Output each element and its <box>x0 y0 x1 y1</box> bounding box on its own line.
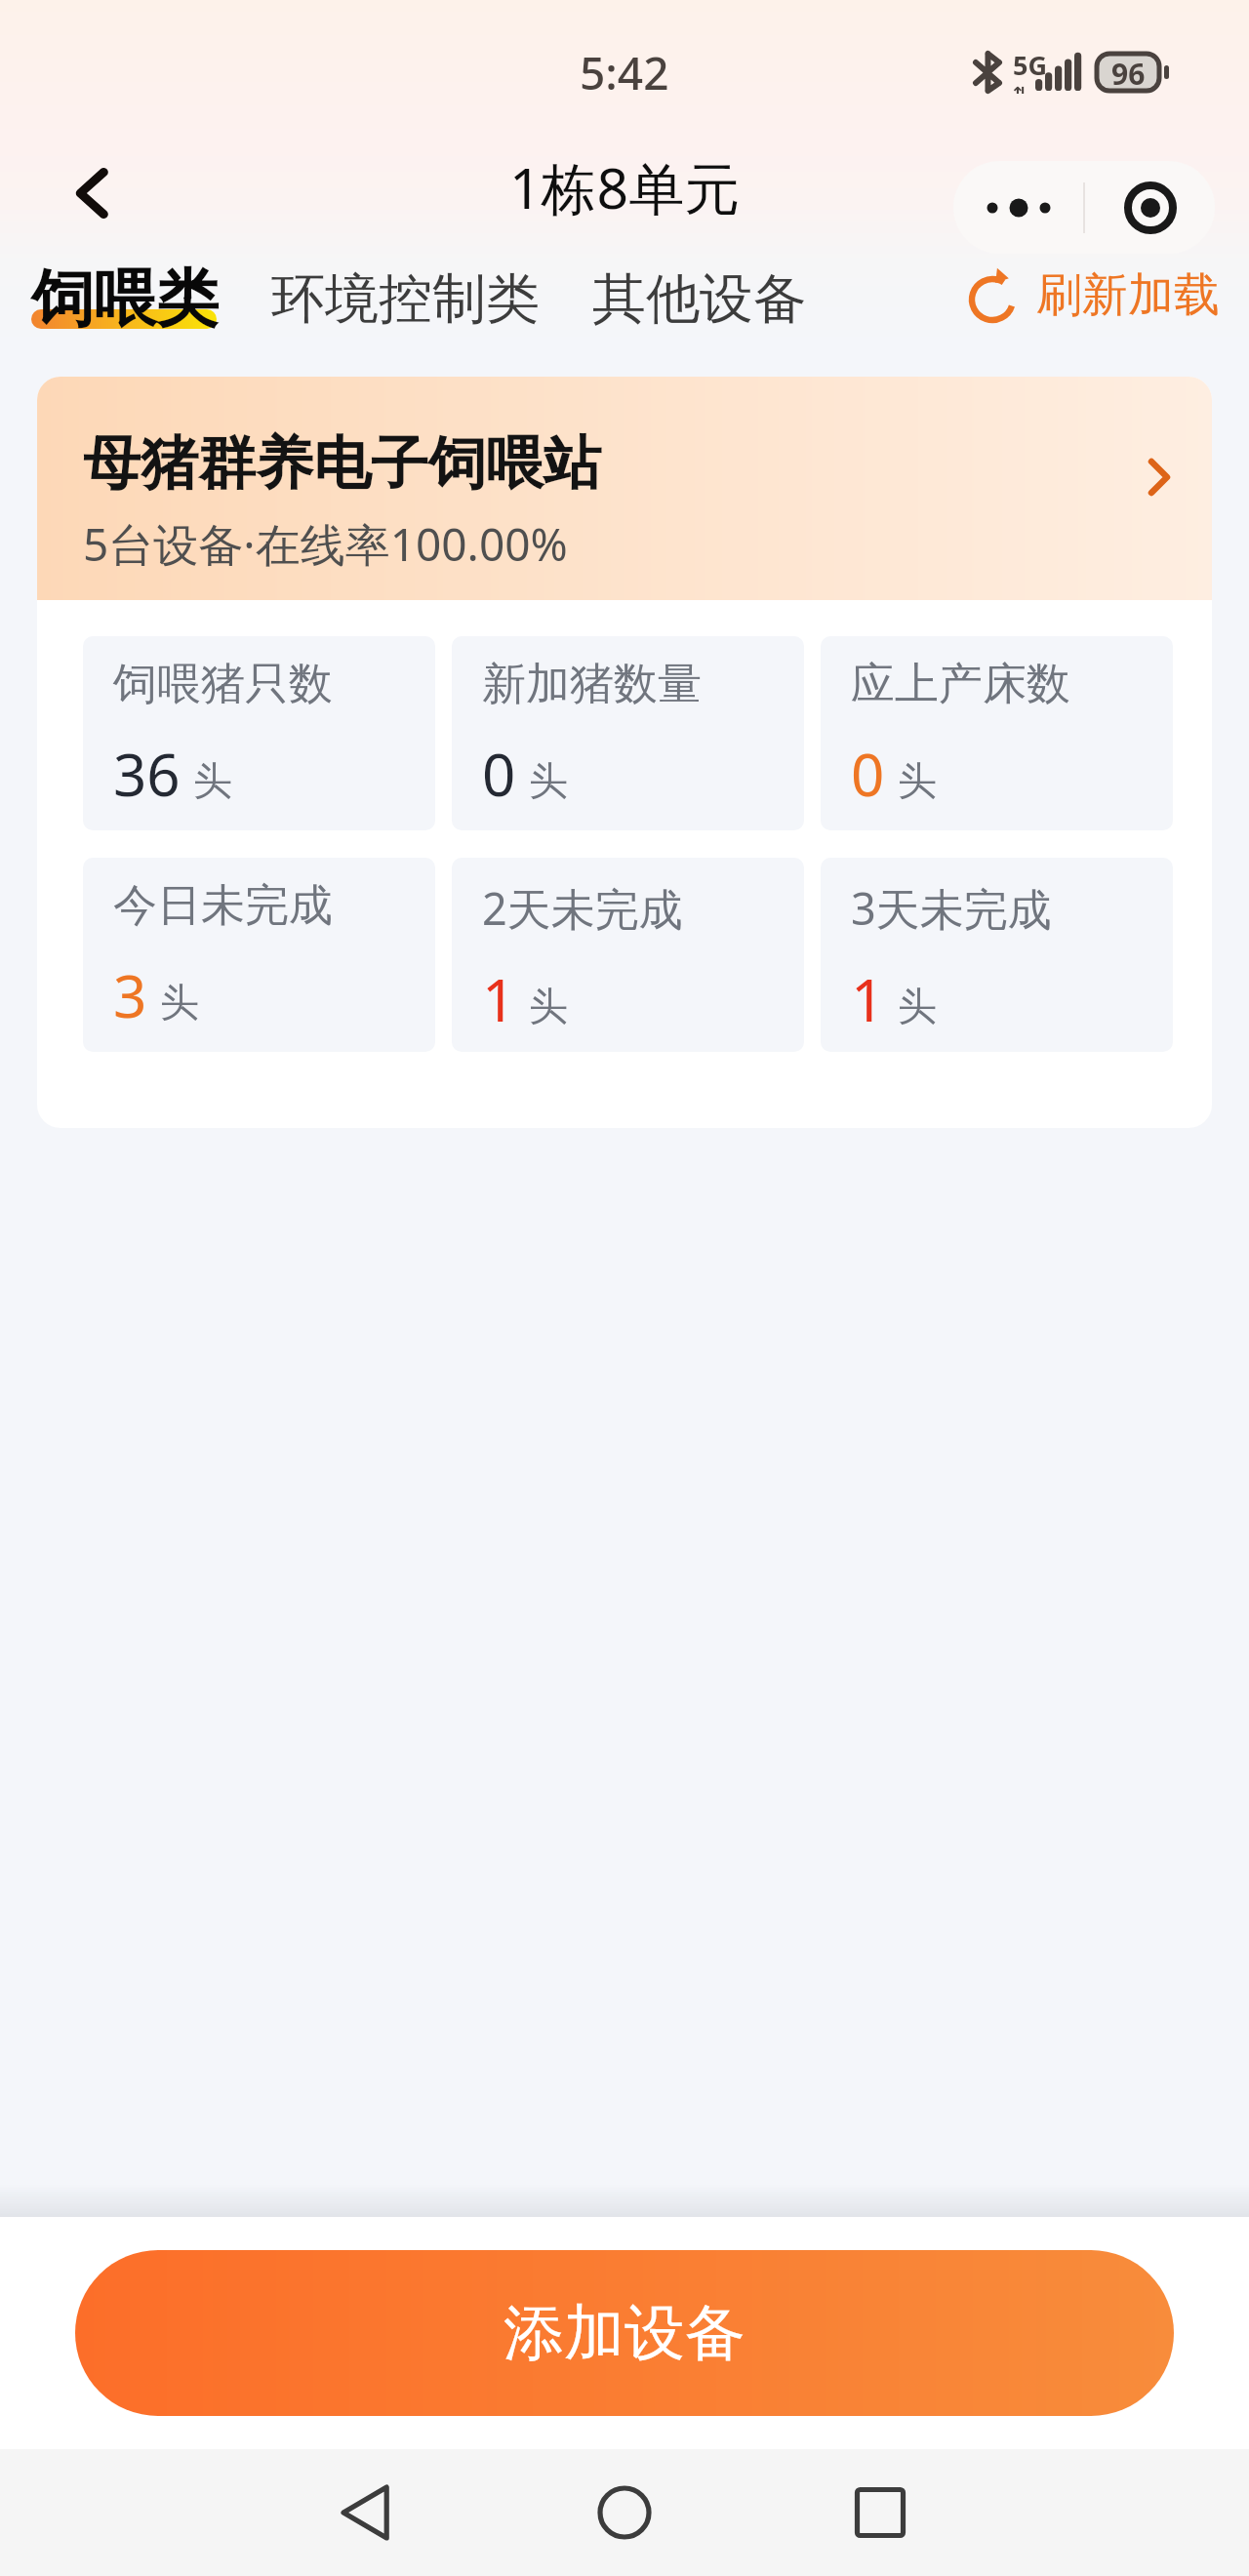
staticText: 应上产床数 <box>851 657 1070 712</box>
staticText: 饲喂类 <box>31 260 219 339</box>
button[interactable]: 其他设备 <box>592 242 807 351</box>
button[interactable]: 饲喂类 <box>31 242 219 351</box>
button[interactable]: Back <box>322 2466 416 2559</box>
staticText: 饲喂猪只数 <box>113 657 333 712</box>
button[interactable]: 3天未完成 <box>821 858 1173 1052</box>
button[interactable]: More <box>953 161 1083 254</box>
staticText: 头 <box>193 756 232 805</box>
staticText: 5台设备·在线率100.00% <box>83 513 568 575</box>
button[interactable]: Refresh <box>964 266 1220 324</box>
staticText: 今日未完成 <box>113 878 333 934</box>
staticText: 2天未完成 <box>482 878 683 938</box>
staticText: 头 <box>529 982 568 1030</box>
staticText: 母猪群养电子饲喂站 <box>83 427 601 500</box>
button[interactable]: 环境控制类 <box>271 242 540 351</box>
button[interactable]: 今日未完成 <box>83 858 435 1052</box>
staticText: 5G <box>1013 47 1047 83</box>
staticText: 头 <box>898 982 937 1030</box>
button[interactable]: Home <box>578 2466 671 2559</box>
staticText: 0 <box>482 734 516 814</box>
staticText: 添加设备 <box>504 2295 745 2371</box>
button[interactable]: 新加猪数量 <box>452 636 804 830</box>
button[interactable]: Recent apps <box>833 2466 927 2559</box>
button[interactable]: 2天未完成 <box>452 858 804 1052</box>
staticText: 头 <box>160 978 199 1026</box>
staticText: 头 <box>529 756 568 805</box>
staticText: 新加猪数量 <box>482 657 702 712</box>
staticText: 1栋8单元 <box>509 149 741 225</box>
button[interactable]: 饲喂猪只数 <box>83 636 435 830</box>
staticText: 5:42 <box>580 42 669 103</box>
staticText: 3 <box>113 955 147 1035</box>
staticText: 刷新加载 <box>1036 266 1220 324</box>
staticText: 3天未完成 <box>851 878 1052 938</box>
button[interactable]: 母猪群养电子饲喂站 <box>37 377 1212 600</box>
staticText: 1 <box>482 959 516 1039</box>
staticText: ⇅ <box>1013 83 1028 94</box>
staticText: 其他设备 <box>592 265 807 333</box>
staticText: 环境控制类 <box>271 265 540 333</box>
button[interactable]: Close mini program <box>1085 161 1215 254</box>
staticText: 头 <box>898 756 937 805</box>
staticText: 36 <box>113 734 181 814</box>
staticText: 0 <box>851 734 885 814</box>
staticText: 96 <box>1111 54 1146 91</box>
button[interactable]: 应上产床数 <box>821 636 1173 830</box>
button[interactable]: Back <box>64 166 119 221</box>
button[interactable]: 添加设备 <box>75 2250 1174 2416</box>
staticText: 1 <box>851 959 885 1039</box>
